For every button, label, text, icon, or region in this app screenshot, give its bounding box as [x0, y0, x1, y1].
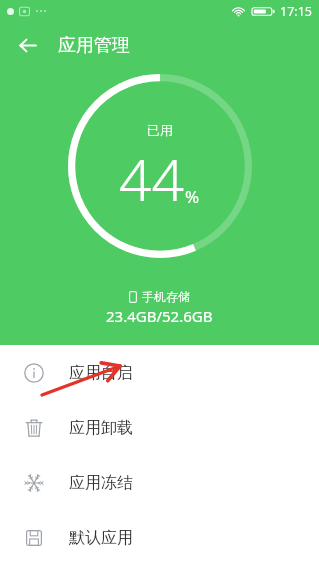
button[interactable]: 应用卸载 — [0, 400, 319, 455]
staticText: 应用管理 — [58, 34, 130, 57]
button[interactable]: 应用冻结 — [0, 455, 319, 510]
staticText: % — [185, 185, 200, 208]
staticText: 应用卸载 — [69, 418, 133, 438]
staticText: 23.4GB/52.6GB — [106, 306, 213, 326]
button[interactable]: 默认应用 — [0, 510, 319, 565]
staticText: 已用 — [147, 122, 173, 138]
staticText: 应用冻结 — [69, 473, 133, 493]
button[interactable]: 应用自启 — [0, 345, 319, 400]
staticText: 44 — [119, 140, 185, 218]
button[interactable]: Back — [6, 24, 48, 66]
staticText: 17:15 — [280, 3, 312, 20]
staticText: 应用自启 — [69, 363, 133, 383]
staticText: 默认应用 — [69, 528, 133, 548]
staticText: 手机存储 — [142, 289, 190, 304]
